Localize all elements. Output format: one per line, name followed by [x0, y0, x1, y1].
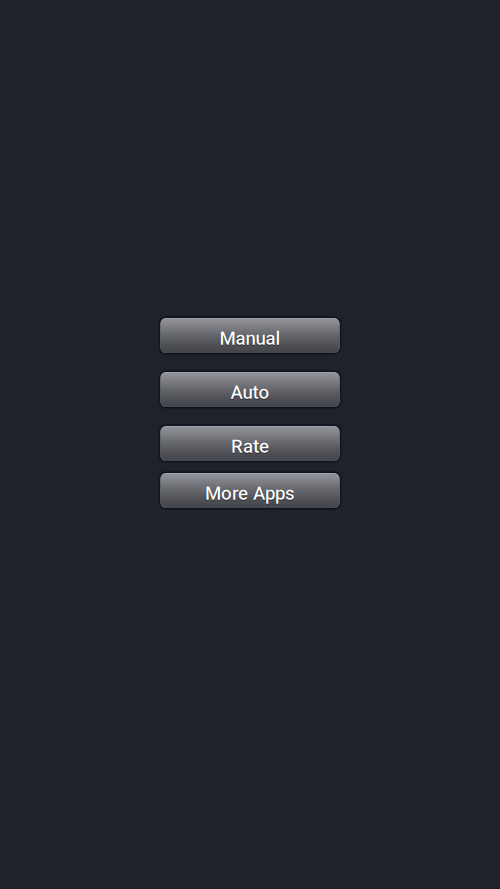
staticText: Rate — [231, 435, 269, 457]
staticText: Rate — [231, 436, 269, 458]
staticText: Manual — [219, 328, 280, 350]
staticText: Auto — [230, 381, 269, 403]
button[interactable]: More Apps — [158, 472, 341, 509]
staticText: Auto — [230, 382, 269, 404]
button[interactable]: Auto — [158, 371, 341, 408]
button[interactable]: Manual — [158, 317, 341, 354]
button[interactable]: Rate — [158, 425, 341, 462]
staticText: More Apps — [205, 483, 295, 505]
staticText: Manual — [219, 327, 280, 349]
staticText: More Apps — [205, 482, 295, 504]
